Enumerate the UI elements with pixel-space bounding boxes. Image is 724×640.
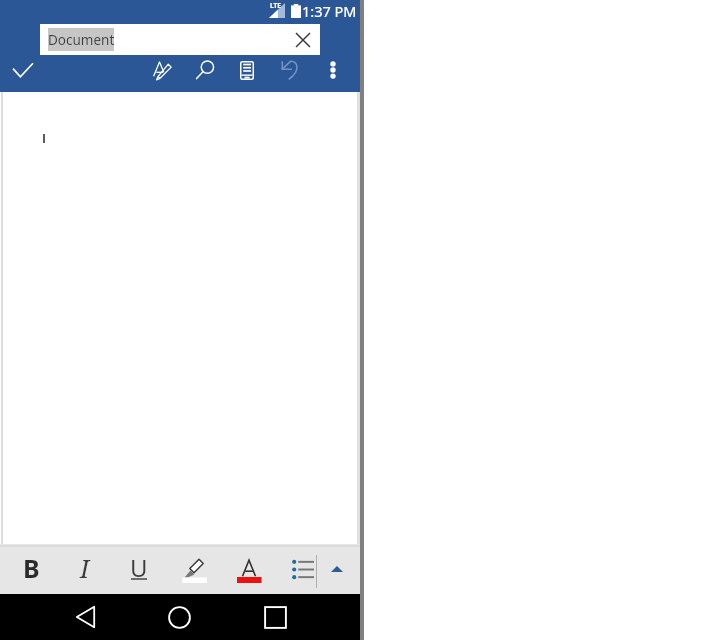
button[interactable]: Italic xyxy=(63,544,107,594)
button[interactable]: Undo xyxy=(271,51,309,89)
button[interactable]: More options xyxy=(314,51,352,89)
button[interactable]: Search xyxy=(187,51,225,89)
staticText: Document xyxy=(48,31,115,49)
staticText: 1:37 PM xyxy=(302,1,357,21)
staticText: B xyxy=(23,551,40,585)
button[interactable]: Back xyxy=(61,594,109,640)
button[interactable]: Clear xyxy=(285,24,320,55)
button[interactable]: Expand xyxy=(315,544,359,594)
button[interactable]: Font colour xyxy=(227,544,271,594)
button[interactable]: Bold xyxy=(9,544,53,594)
button[interactable]: Recents xyxy=(251,594,299,640)
button[interactable]: Home xyxy=(155,594,203,640)
button[interactable]: Mobile view xyxy=(228,51,266,89)
staticText: U xyxy=(130,551,148,581)
staticText: I xyxy=(80,551,90,585)
button[interactable]: Highlight xyxy=(172,544,216,594)
button[interactable]: Format text xyxy=(142,51,180,89)
button[interactable]: Underline xyxy=(117,544,161,594)
button[interactable]: Done xyxy=(4,51,42,89)
button[interactable]: Document xyxy=(40,24,320,55)
button[interactable]: Bullet list xyxy=(281,544,325,594)
staticText: LTE xyxy=(270,1,281,10)
